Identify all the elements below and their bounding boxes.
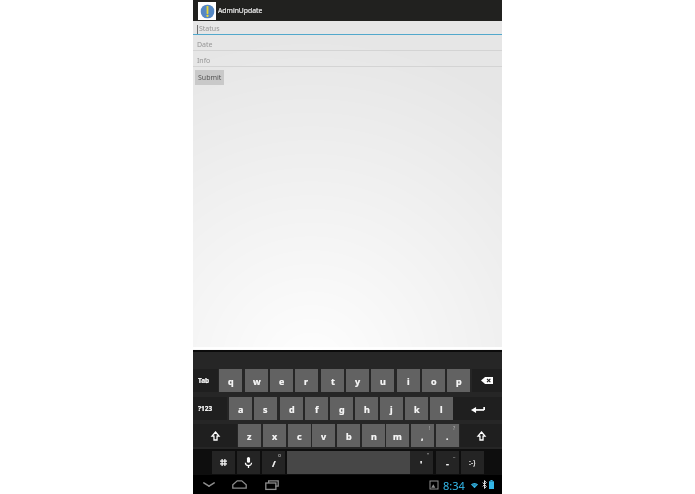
button[interactable]: Recents [260, 475, 283, 494]
staticText: ?123 [198, 404, 213, 413]
button[interactable]: k [405, 397, 428, 420]
button[interactable]: w [245, 369, 268, 392]
staticText: r [304, 375, 309, 387]
staticText: - [446, 457, 449, 469]
button[interactable]: u [371, 369, 394, 392]
button[interactable]: shift [193, 424, 237, 447]
button[interactable]: g [330, 397, 353, 420]
staticText: u [380, 375, 386, 387]
staticText: , [421, 430, 424, 442]
button[interactable]: " [410, 451, 433, 474]
button[interactable]: r [295, 369, 318, 392]
staticText: d [289, 403, 295, 415]
button[interactable]: m [386, 424, 409, 447]
button[interactable]: ?123 [193, 397, 227, 420]
button[interactable]: s [254, 397, 277, 420]
staticText: j [390, 403, 393, 415]
staticText: Status [199, 24, 220, 34]
button[interactable]: ! [411, 424, 434, 447]
staticText: ' [420, 457, 423, 469]
button[interactable]: q [219, 369, 242, 392]
staticText: p [456, 375, 462, 387]
button[interactable]: d [280, 397, 303, 420]
button[interactable]: z [238, 424, 261, 447]
staticText: w [253, 375, 261, 387]
button[interactable]: x [263, 424, 286, 447]
button[interactable]: b [337, 424, 360, 447]
button[interactable]: ? [436, 424, 459, 447]
staticText: y [355, 375, 361, 387]
staticText: f [315, 403, 319, 415]
staticText: Info [197, 56, 211, 66]
staticText: AdminUpdate [218, 6, 263, 15]
button[interactable]: Tab [193, 369, 218, 392]
staticText: x [272, 430, 278, 442]
button[interactable]: y [346, 369, 369, 392]
staticText: / [272, 457, 276, 469]
button[interactable]: c [288, 424, 311, 447]
button[interactable]: del [472, 369, 502, 392]
staticText: . [446, 430, 449, 442]
staticText: Date [197, 40, 213, 50]
staticText: :-) [469, 458, 476, 468]
staticText: a [238, 403, 244, 415]
staticText: h [364, 403, 370, 415]
staticText: Submit [198, 73, 222, 83]
staticText: m [393, 430, 402, 442]
staticText: _ [453, 452, 456, 459]
staticText: ! [429, 425, 431, 432]
staticText: Tab [198, 376, 210, 385]
staticText: b [346, 430, 352, 442]
button[interactable]: n [362, 424, 385, 447]
staticText: s [263, 403, 268, 415]
button[interactable]: :-) [461, 451, 484, 474]
button[interactable]: Date [193, 37, 502, 53]
staticText: e [279, 375, 285, 387]
staticText: c [297, 430, 302, 442]
staticText: g [339, 403, 345, 415]
button[interactable]: a [229, 397, 252, 420]
button[interactable]: mic [237, 451, 260, 474]
button[interactable]: o [262, 451, 285, 474]
staticText: n [371, 430, 377, 442]
button[interactable]: j [380, 397, 403, 420]
button[interactable]: t [321, 369, 344, 392]
staticText: o [278, 452, 282, 459]
staticText: t [331, 375, 335, 387]
staticText: o [431, 375, 437, 387]
button[interactable]: v [312, 424, 335, 447]
button[interactable]: e [270, 369, 293, 392]
staticText: ? [453, 425, 456, 432]
button[interactable]: shift [460, 424, 502, 447]
button[interactable]: grid [212, 451, 235, 474]
button[interactable]: Submit [195, 70, 224, 85]
staticText: z [247, 430, 252, 442]
button[interactable]: Hide keyboard [197, 475, 220, 494]
button[interactable]: h [355, 397, 378, 420]
staticText: i [407, 375, 410, 387]
button[interactable]: p [447, 369, 470, 392]
staticText: l [440, 403, 443, 415]
staticText: v [321, 430, 327, 442]
button[interactable]: enter [453, 397, 502, 420]
staticText: " [427, 452, 430, 459]
button[interactable]: _ [436, 451, 459, 474]
staticText: 8:34 [443, 478, 465, 493]
button[interactable]: o [422, 369, 445, 392]
button[interactable]: f [305, 397, 328, 420]
staticText: q [228, 375, 234, 387]
button[interactable]: Status [193, 21, 502, 37]
button[interactable]: l [430, 397, 453, 420]
button[interactable]: Info [193, 53, 502, 69]
button[interactable]: Home [228, 475, 251, 494]
button[interactable]: i [397, 369, 420, 392]
staticText: k [414, 403, 420, 415]
